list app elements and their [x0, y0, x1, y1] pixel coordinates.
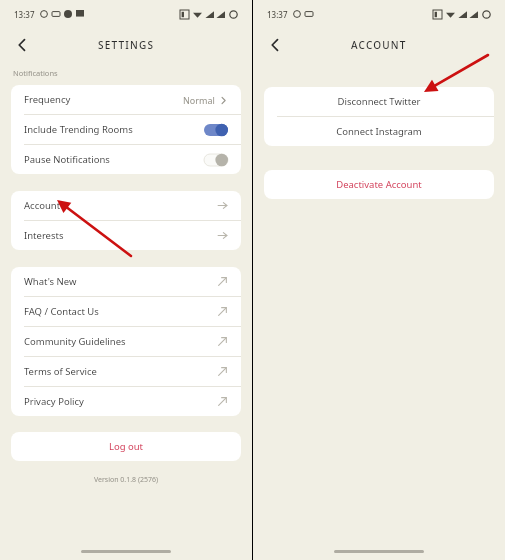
button[interactable]: Interests [11, 221, 241, 250]
staticText: Terms of Service [24, 365, 97, 378]
button[interactable]: Disconnect Twitter [264, 87, 494, 116]
staticText: Connect Instagram [277, 125, 481, 138]
button[interactable]: FAQ / Contact Us [11, 297, 241, 326]
button[interactable]: Community Guidelines [11, 327, 241, 356]
staticText: 13:37 [14, 9, 35, 20]
staticText: Interests [24, 229, 64, 242]
staticText: Log out [24, 440, 228, 453]
staticText: Privacy Policy [24, 395, 84, 408]
staticText: What's New [24, 275, 77, 288]
button[interactable]: Terms of Service [11, 357, 241, 386]
staticText: Normal [183, 94, 215, 106]
staticText: 13:37 [267, 9, 288, 20]
staticText: Version 0.1.8 (2576) [0, 475, 252, 485]
staticText: Frequency [24, 93, 71, 106]
button[interactable]: Log out [11, 432, 241, 461]
button[interactable]: Back [261, 31, 289, 59]
button[interactable]: Pause Notifications [11, 145, 241, 174]
button[interactable]: Toggle on [204, 124, 228, 136]
button[interactable]: Connect Instagram [264, 117, 494, 146]
staticText: Pause Notifications [24, 153, 110, 166]
staticText: FAQ / Contact Us [24, 305, 99, 318]
button[interactable]: Account [11, 191, 241, 220]
button[interactable]: Back [8, 31, 36, 59]
button[interactable]: Privacy Policy [11, 387, 241, 416]
staticText: Community Guidelines [24, 335, 126, 348]
staticText: Disconnect Twitter [277, 95, 481, 108]
staticText: SETTINGS [98, 38, 155, 52]
button[interactable]: Toggle off [204, 154, 228, 166]
button[interactable]: Include Trending Rooms [11, 115, 241, 144]
button[interactable]: Deactivate Account [264, 170, 494, 199]
staticText: Notifications [13, 68, 58, 78]
staticText: Deactivate Account [277, 178, 481, 191]
staticText: ACCOUNT [351, 38, 407, 52]
staticText: Include Trending Rooms [24, 123, 133, 136]
button[interactable]: What's New [11, 267, 241, 296]
staticText: Account [24, 199, 61, 212]
button[interactable]: Frequency [11, 85, 241, 114]
